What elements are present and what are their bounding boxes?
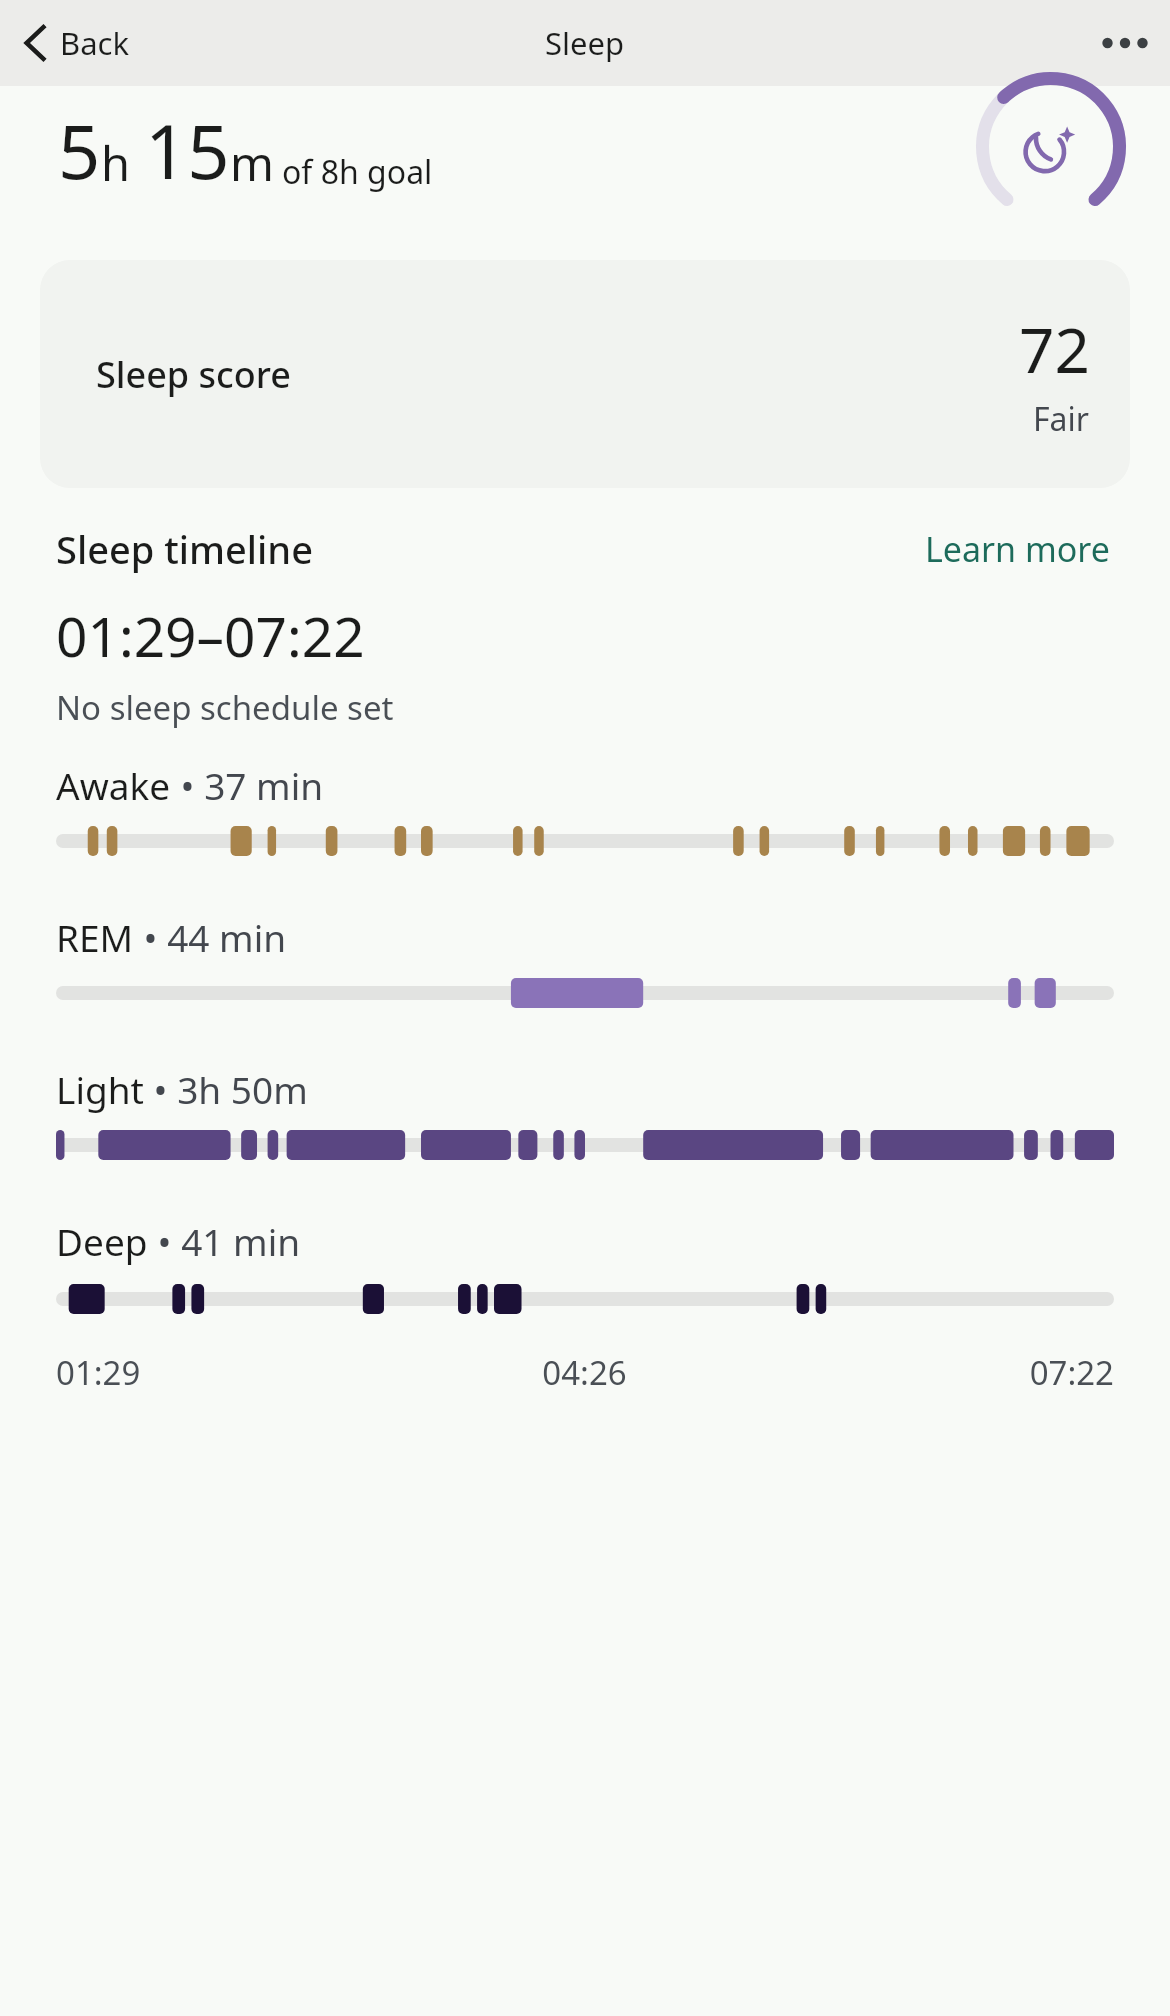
staticText: REM — [56, 912, 134, 962]
button[interactable]: Sleep score — [40, 260, 1130, 488]
staticText: 07:22 — [761, 1350, 1114, 1395]
button[interactable]: More options — [1096, 14, 1154, 72]
staticText: 04:26 — [408, 1350, 761, 1395]
staticText: No sleep schedule set — [56, 685, 394, 730]
staticText: h — [101, 131, 131, 195]
button[interactable]: Back — [8, 15, 141, 71]
staticText: 15 — [145, 100, 230, 201]
staticText: Back — [60, 22, 129, 64]
staticText: • 41 min — [148, 1216, 301, 1266]
staticText: Fair — [1033, 397, 1090, 441]
staticText: 5 — [58, 100, 101, 201]
staticText: Sleep score — [96, 350, 291, 399]
staticText: 01:29 — [56, 1350, 408, 1395]
staticText: Awake — [56, 760, 171, 810]
staticText: Light — [56, 1064, 144, 1114]
staticText: m — [230, 131, 274, 195]
staticText: • 3h 50m — [144, 1064, 308, 1114]
staticText: • 37 min — [171, 760, 324, 810]
staticText: Sleep — [545, 22, 625, 64]
staticText: Sleep timeline — [56, 523, 313, 575]
button[interactable]: Learn more — [921, 522, 1114, 576]
staticText: 01:29–07:22 — [56, 598, 365, 673]
staticText: of 8h goal — [282, 150, 433, 194]
staticText: Deep — [56, 1216, 148, 1266]
staticText: Learn more — [925, 526, 1110, 572]
staticText: 72 — [1019, 307, 1090, 391]
staticText: • 44 min — [134, 912, 287, 962]
